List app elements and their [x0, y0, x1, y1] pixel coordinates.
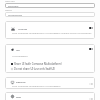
button[interactable]: Disable platform	[89, 48, 93, 50]
button[interactable]: org.example.project	[5, 12, 95, 17]
button[interactable]: iOS platform	[5, 44, 95, 73]
button[interactable]: Share UI (with Compose Multiplatform)	[11, 62, 94, 65]
staticText: Android	[18, 27, 28, 30]
button[interactable]: Android platform	[5, 21, 95, 39]
staticText: UI Framework	[12, 54, 28, 57]
button[interactable]: Desktop platform	[5, 77, 95, 89]
staticText: With Compose Multiplatform UI framework	[12, 84, 61, 87]
staticText: Share UI (with Compose Multiplatform)	[14, 62, 62, 65]
button[interactable]: Do not share UI (use only SwiftUI)	[11, 67, 94, 70]
staticText: Project Name	[5, 0, 15, 2]
staticText: With Compose Multiplatform UI framework …	[12, 31, 92, 34]
staticText: org.example.project	[8, 14, 23, 16]
staticText: Do not share UI (use only SwiftUI)	[14, 67, 55, 70]
staticText: HelloCompose	[8, 5, 19, 7]
button[interactable]: Enable platform	[89, 98, 93, 100]
button[interactable]: HelloCompose	[5, 3, 95, 8]
staticText: Project ID	[5, 9, 12, 11]
button[interactable]: Enable platform	[89, 83, 93, 85]
staticText: iOS	[16, 48, 20, 51]
button[interactable]: Disable platform	[89, 27, 93, 29]
staticText: Desktop	[16, 80, 26, 83]
button[interactable]: Web platform	[5, 92, 95, 100]
staticText: Web	[16, 95, 22, 98]
